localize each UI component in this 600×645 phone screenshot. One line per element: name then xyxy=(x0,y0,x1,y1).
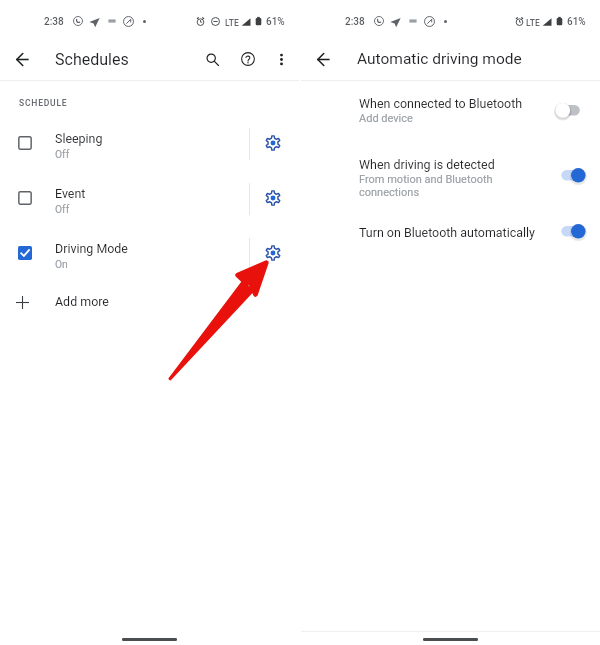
button[interactable]: Driving Mode xyxy=(0,226,299,281)
staticText: LTE xyxy=(225,18,239,28)
staticText: 2:38 xyxy=(345,16,365,28)
button[interactable]: Back xyxy=(306,42,340,76)
button[interactable]: When connected to Bluetooth xyxy=(301,91,600,141)
button[interactable]: Add more xyxy=(0,279,299,325)
staticText: Off xyxy=(55,203,70,215)
staticText: Add device xyxy=(359,112,413,125)
button[interactable]: Sleeping xyxy=(0,116,299,171)
staticText: 61% xyxy=(567,16,586,28)
staticText: 2:38 xyxy=(44,16,64,28)
staticText: Schedules xyxy=(55,50,129,69)
staticText: Off xyxy=(55,148,70,160)
button[interactable]: Settings xyxy=(254,179,292,217)
staticText: Turn on Bluetooth automatically xyxy=(359,225,535,240)
button[interactable]: More options xyxy=(265,43,297,75)
button[interactable]: Back xyxy=(5,42,39,76)
button[interactable]: Toggle on xyxy=(553,170,587,194)
staticText: When connected to Bluetooth xyxy=(359,96,523,111)
staticText: Automatic driving mode xyxy=(357,50,522,68)
staticText: From motion and Bluetooth connections xyxy=(359,173,493,199)
staticText: LTE xyxy=(526,18,540,28)
button[interactable]: Settings xyxy=(254,124,292,162)
button[interactable]: Turn on Bluetooth automatically xyxy=(301,220,600,258)
button[interactable]: Settings xyxy=(254,234,292,272)
button[interactable]: Search xyxy=(196,43,228,75)
button[interactable]: Event xyxy=(0,171,299,226)
staticText: On xyxy=(55,258,68,270)
staticText: SCHEDULE xyxy=(19,98,68,108)
button[interactable]: When driving is detected xyxy=(301,152,600,202)
button[interactable]: Toggle on xyxy=(553,226,587,250)
button[interactable]: Toggle off xyxy=(553,105,587,129)
staticText: Add more xyxy=(55,294,109,309)
staticText: Event xyxy=(55,186,86,201)
staticText: Sleeping xyxy=(55,131,103,146)
staticText: Driving Mode xyxy=(55,241,128,256)
staticText: 61% xyxy=(266,16,285,28)
button[interactable]: Help xyxy=(232,43,264,75)
staticText: When driving is detected xyxy=(359,157,495,172)
